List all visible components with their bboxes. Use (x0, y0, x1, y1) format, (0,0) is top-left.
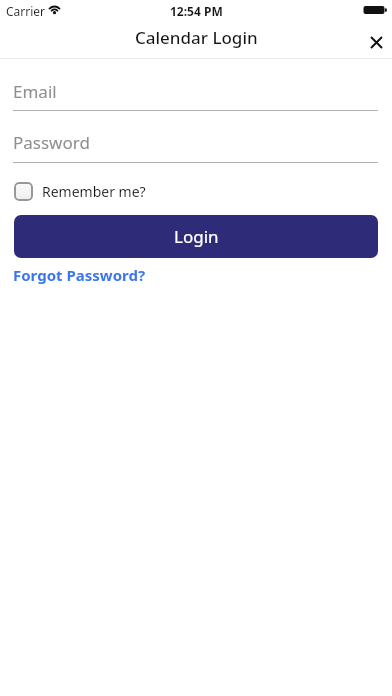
staticText: Login (174, 225, 219, 248)
staticText: Remember me? (42, 182, 146, 201)
staticText: Carrier (6, 3, 46, 19)
staticText: Calendar Login (135, 26, 258, 49)
staticText: 12:54 PM (170, 3, 223, 19)
button[interactable]: Login (14, 215, 378, 258)
button[interactable] (364, 30, 388, 54)
button[interactable]: Remember me? (14, 182, 146, 201)
staticText: Password (13, 131, 90, 154)
staticText: Email (13, 80, 57, 103)
staticText: Forgot Password? (13, 265, 146, 285)
button[interactable]: Forgot Password? (13, 265, 146, 285)
button[interactable]: Email (13, 72, 378, 111)
button[interactable]: Password (13, 123, 378, 162)
